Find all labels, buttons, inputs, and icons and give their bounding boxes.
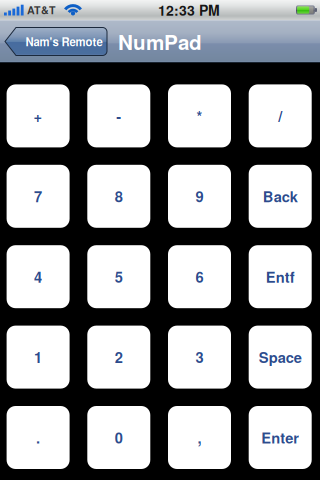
staticText: Space [259, 347, 302, 368]
button[interactable]: / [249, 84, 312, 147]
staticText: - [116, 105, 121, 126]
staticText: 5 [115, 266, 123, 287]
staticText: . [36, 427, 40, 448]
staticText: 8 [115, 186, 123, 207]
staticText: * [196, 105, 202, 126]
button[interactable]: . [7, 406, 70, 469]
button[interactable]: + [7, 84, 70, 147]
staticText: 9 [195, 186, 203, 207]
button[interactable]: 8 [87, 165, 150, 228]
staticText: AT&T [27, 2, 56, 18]
button[interactable]: 7 [7, 165, 70, 228]
staticText: , [197, 427, 201, 448]
button[interactable]: 2 [87, 326, 150, 389]
staticText: Entf [266, 266, 295, 287]
button[interactable]: Nam's Remote [5, 27, 107, 55]
button[interactable]: - [87, 84, 150, 147]
button[interactable]: Space [249, 326, 312, 389]
staticText: NumPad [118, 27, 202, 56]
button[interactable]: 4 [7, 245, 70, 308]
button[interactable]: Entf [249, 245, 312, 308]
staticText: / [278, 105, 282, 126]
button[interactable]: 1 [7, 326, 70, 389]
staticText: 7 [34, 186, 42, 207]
staticText: 3 [195, 347, 203, 368]
button[interactable]: 9 [168, 165, 231, 228]
staticText: 4 [34, 266, 42, 287]
button[interactable]: Enter [249, 406, 312, 469]
staticText: Enter [261, 427, 299, 448]
button[interactable]: 0 [87, 406, 150, 469]
staticText: + [34, 105, 43, 126]
button[interactable]: 6 [168, 245, 231, 308]
button[interactable]: 3 [168, 326, 231, 389]
button[interactable]: 5 [87, 245, 150, 308]
button[interactable]: * [168, 84, 231, 147]
staticText: Back [263, 186, 298, 207]
staticText: 0 [115, 427, 123, 448]
staticText: 12:33 PM [158, 0, 220, 20]
button[interactable]: Back [249, 165, 312, 228]
button[interactable]: , [168, 406, 231, 469]
staticText: 2 [115, 347, 123, 368]
staticText: Nam's Remote [25, 33, 102, 50]
staticText: 1 [34, 347, 42, 368]
staticText: 6 [195, 266, 203, 287]
